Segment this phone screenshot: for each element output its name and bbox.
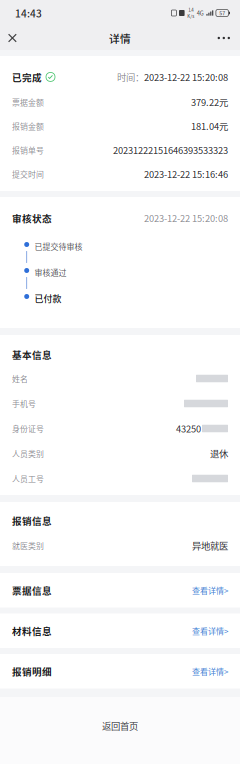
staticText: 14:43 <box>15 6 42 20</box>
staticText: 379.22元 <box>191 95 228 109</box>
staticText: 返回首页 <box>102 719 138 732</box>
staticText: K/s <box>187 13 194 19</box>
staticText: 就医类别 <box>12 540 44 551</box>
button[interactable]: 票据信息 <box>0 573 240 607</box>
staticText: 退休 <box>210 447 228 460</box>
staticText: 报销金额 <box>12 120 44 132</box>
button[interactable]: 返回首页 <box>0 697 240 764</box>
staticText: 报销明细 <box>12 664 52 678</box>
staticText: 43250 <box>176 422 201 435</box>
staticText: 姓名 <box>12 373 28 384</box>
button[interactable]: More options <box>208 27 240 49</box>
button[interactable]: 材料信息 <box>0 613 240 648</box>
staticText: 时间： <box>117 70 144 84</box>
staticText: 已付款 <box>34 292 61 305</box>
staticText: 已提交待审核 <box>34 240 82 252</box>
staticText: 2023-12-22 15:20:08 <box>144 211 228 225</box>
staticText: 详情 <box>109 30 131 46</box>
button[interactable]: Close <box>0 27 27 49</box>
staticText: 报销单号 <box>12 144 44 156</box>
staticText: 2023-12-22 15:20:08 <box>144 70 228 84</box>
staticText: 查看详情> <box>192 665 228 677</box>
staticText: 审核通过 <box>34 266 66 278</box>
staticText: 基本信息 <box>12 347 52 361</box>
staticText: 4G <box>197 9 204 17</box>
staticText: 20231222151646393533323 <box>113 143 228 157</box>
staticText: 人员类别 <box>12 448 44 459</box>
staticText: 2023-12-22 15:16:46 <box>144 167 228 181</box>
staticText: 身份证号 <box>12 423 44 434</box>
staticText: 手机号 <box>12 398 36 409</box>
staticText: 审核状态 <box>12 211 52 225</box>
staticText: 票据信息 <box>12 583 52 597</box>
staticText: 材料信息 <box>12 624 52 638</box>
staticText: 已完成 <box>12 70 42 84</box>
staticText: 异地就医 <box>192 539 228 552</box>
staticText: 提交时间 <box>12 168 44 180</box>
staticText: 人员工号 <box>12 473 44 484</box>
staticText: 报销信息 <box>12 513 52 527</box>
staticText: 1.4 <box>188 7 193 13</box>
staticText: 查看详情> <box>192 584 228 596</box>
staticText: 57 <box>219 9 225 17</box>
button[interactable]: 报销明细 <box>0 654 240 688</box>
staticText: 查看详情> <box>192 625 228 637</box>
staticText: 票据金额 <box>12 96 44 108</box>
staticText: 181.04元 <box>191 119 228 133</box>
